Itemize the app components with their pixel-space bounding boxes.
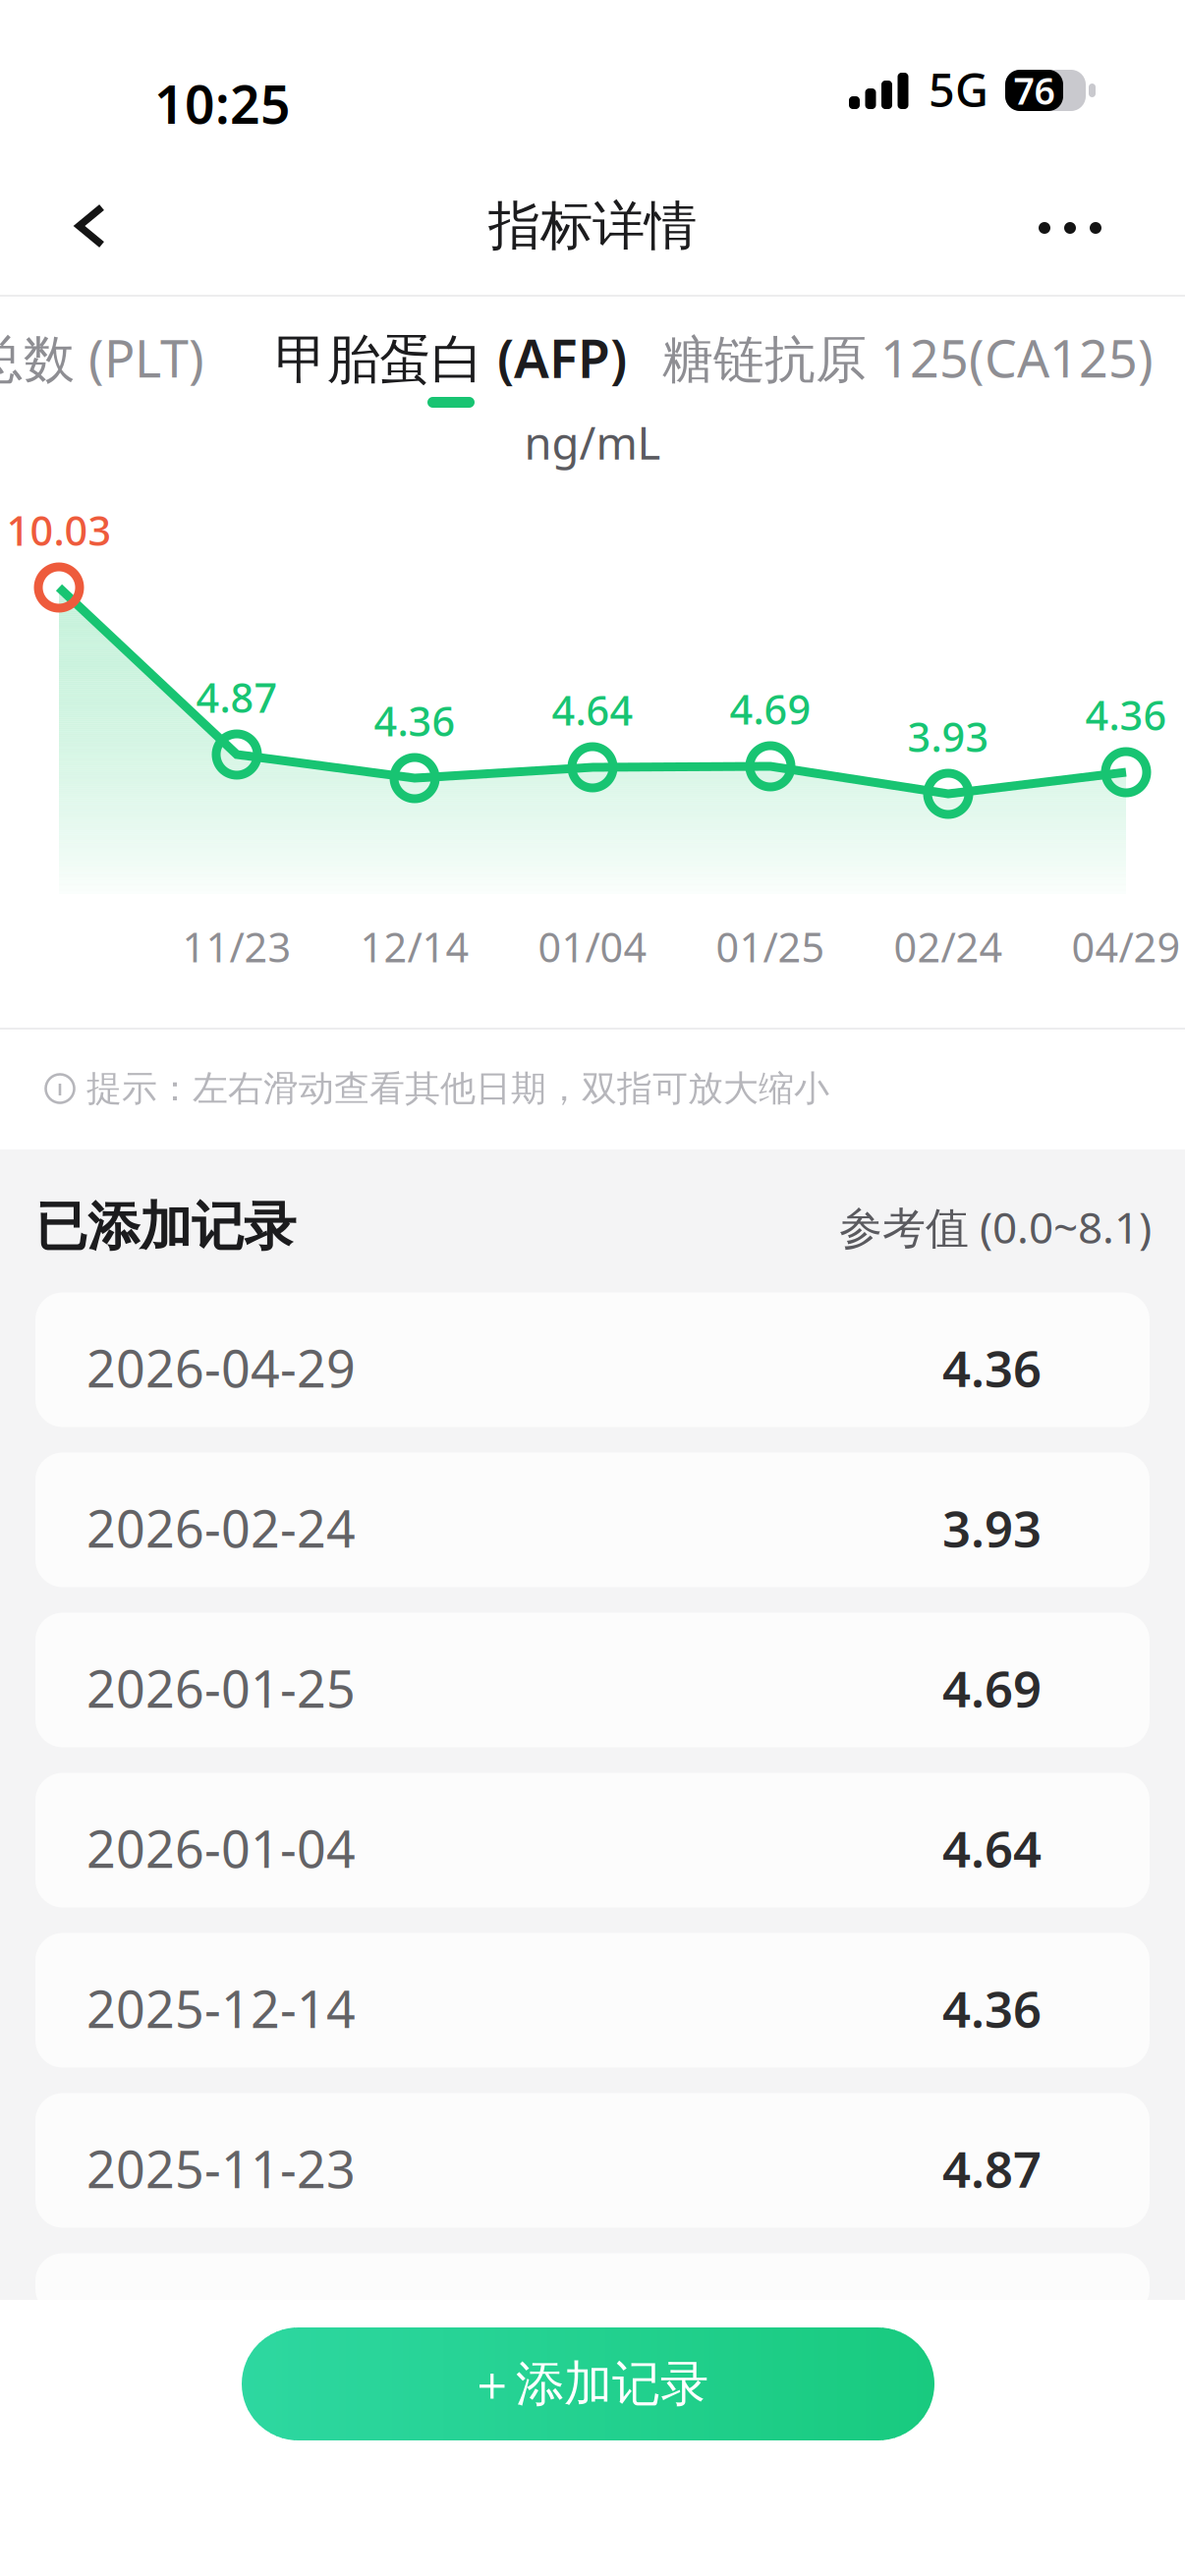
- button[interactable]: 2026-04-29: [35, 1292, 1150, 1427]
- button[interactable]: More: [1010, 169, 1130, 287]
- staticText: ng/mL: [524, 413, 661, 472]
- button[interactable]: 2025-12-14: [35, 1933, 1150, 2068]
- staticText: 指标详情: [488, 194, 697, 258]
- staticText: 已添加记录: [35, 1195, 296, 1259]
- staticText: ＋添加记录: [468, 2354, 708, 2414]
- staticText: 2026-04-29: [86, 1334, 356, 1402]
- staticText: 04/29: [1072, 920, 1181, 974]
- staticText: 4.87: [196, 670, 278, 724]
- staticText: 2025-12-14: [86, 1974, 356, 2042]
- staticText: 甲胎蛋白 (AFP): [275, 323, 627, 392]
- button[interactable]: 总数 (PLT): [0, 326, 236, 389]
- staticText: 01/25: [716, 920, 825, 974]
- button[interactable]: 2026-01-25: [35, 1613, 1150, 1747]
- staticText: 4.36: [942, 1975, 1042, 2041]
- staticText: 01/04: [538, 920, 647, 974]
- button[interactable]: Back: [39, 167, 141, 285]
- staticText: 4.36: [374, 694, 455, 748]
- button[interactable]: 甲胎蛋白 (AFP): [264, 326, 638, 408]
- staticText: 4.87: [942, 2135, 1042, 2201]
- staticText: 3.93: [942, 1495, 1042, 1561]
- button[interactable]: ＋添加记录: [242, 2327, 934, 2440]
- staticText: 2026-02-24: [86, 1494, 356, 1562]
- staticText: 4.64: [552, 683, 633, 737]
- staticText: 11/23: [182, 920, 291, 974]
- button[interactable]: 2025-11-23: [35, 2093, 1150, 2228]
- staticText: 5G: [929, 59, 988, 120]
- staticText: 3.93: [907, 709, 989, 763]
- staticText: 4.36: [942, 1335, 1042, 1401]
- staticText: 4.69: [942, 1655, 1042, 1721]
- staticText: 总数 (PLT): [0, 324, 204, 392]
- staticText: 4.69: [730, 682, 811, 736]
- staticText: 2026-01-04: [86, 1814, 356, 1882]
- staticText: 02/24: [894, 920, 1003, 974]
- staticText: 10.03: [6, 503, 112, 557]
- button[interactable]: 2026-02-24: [35, 1453, 1150, 1587]
- staticText: 糖链抗原 125(CA125): [662, 324, 1154, 392]
- staticText: 提示：左右滑动查看其他日期，双指可放大缩小: [86, 1067, 829, 1110]
- staticText: 76: [1014, 66, 1055, 115]
- button[interactable]: 糖链抗原 125(CA125): [652, 326, 1163, 389]
- staticText: 12/14: [360, 920, 469, 974]
- staticText: 4.64: [942, 1815, 1042, 1881]
- staticText: 2025-11-23: [86, 2134, 356, 2202]
- staticText: 10:25: [154, 69, 291, 138]
- staticText: 2026-01-25: [86, 1654, 356, 1722]
- staticText: 参考值 (0.0~8.1): [839, 1198, 1152, 1255]
- staticText: 4.36: [1085, 688, 1167, 742]
- button[interactable]: 2026-01-04: [35, 1773, 1150, 1907]
